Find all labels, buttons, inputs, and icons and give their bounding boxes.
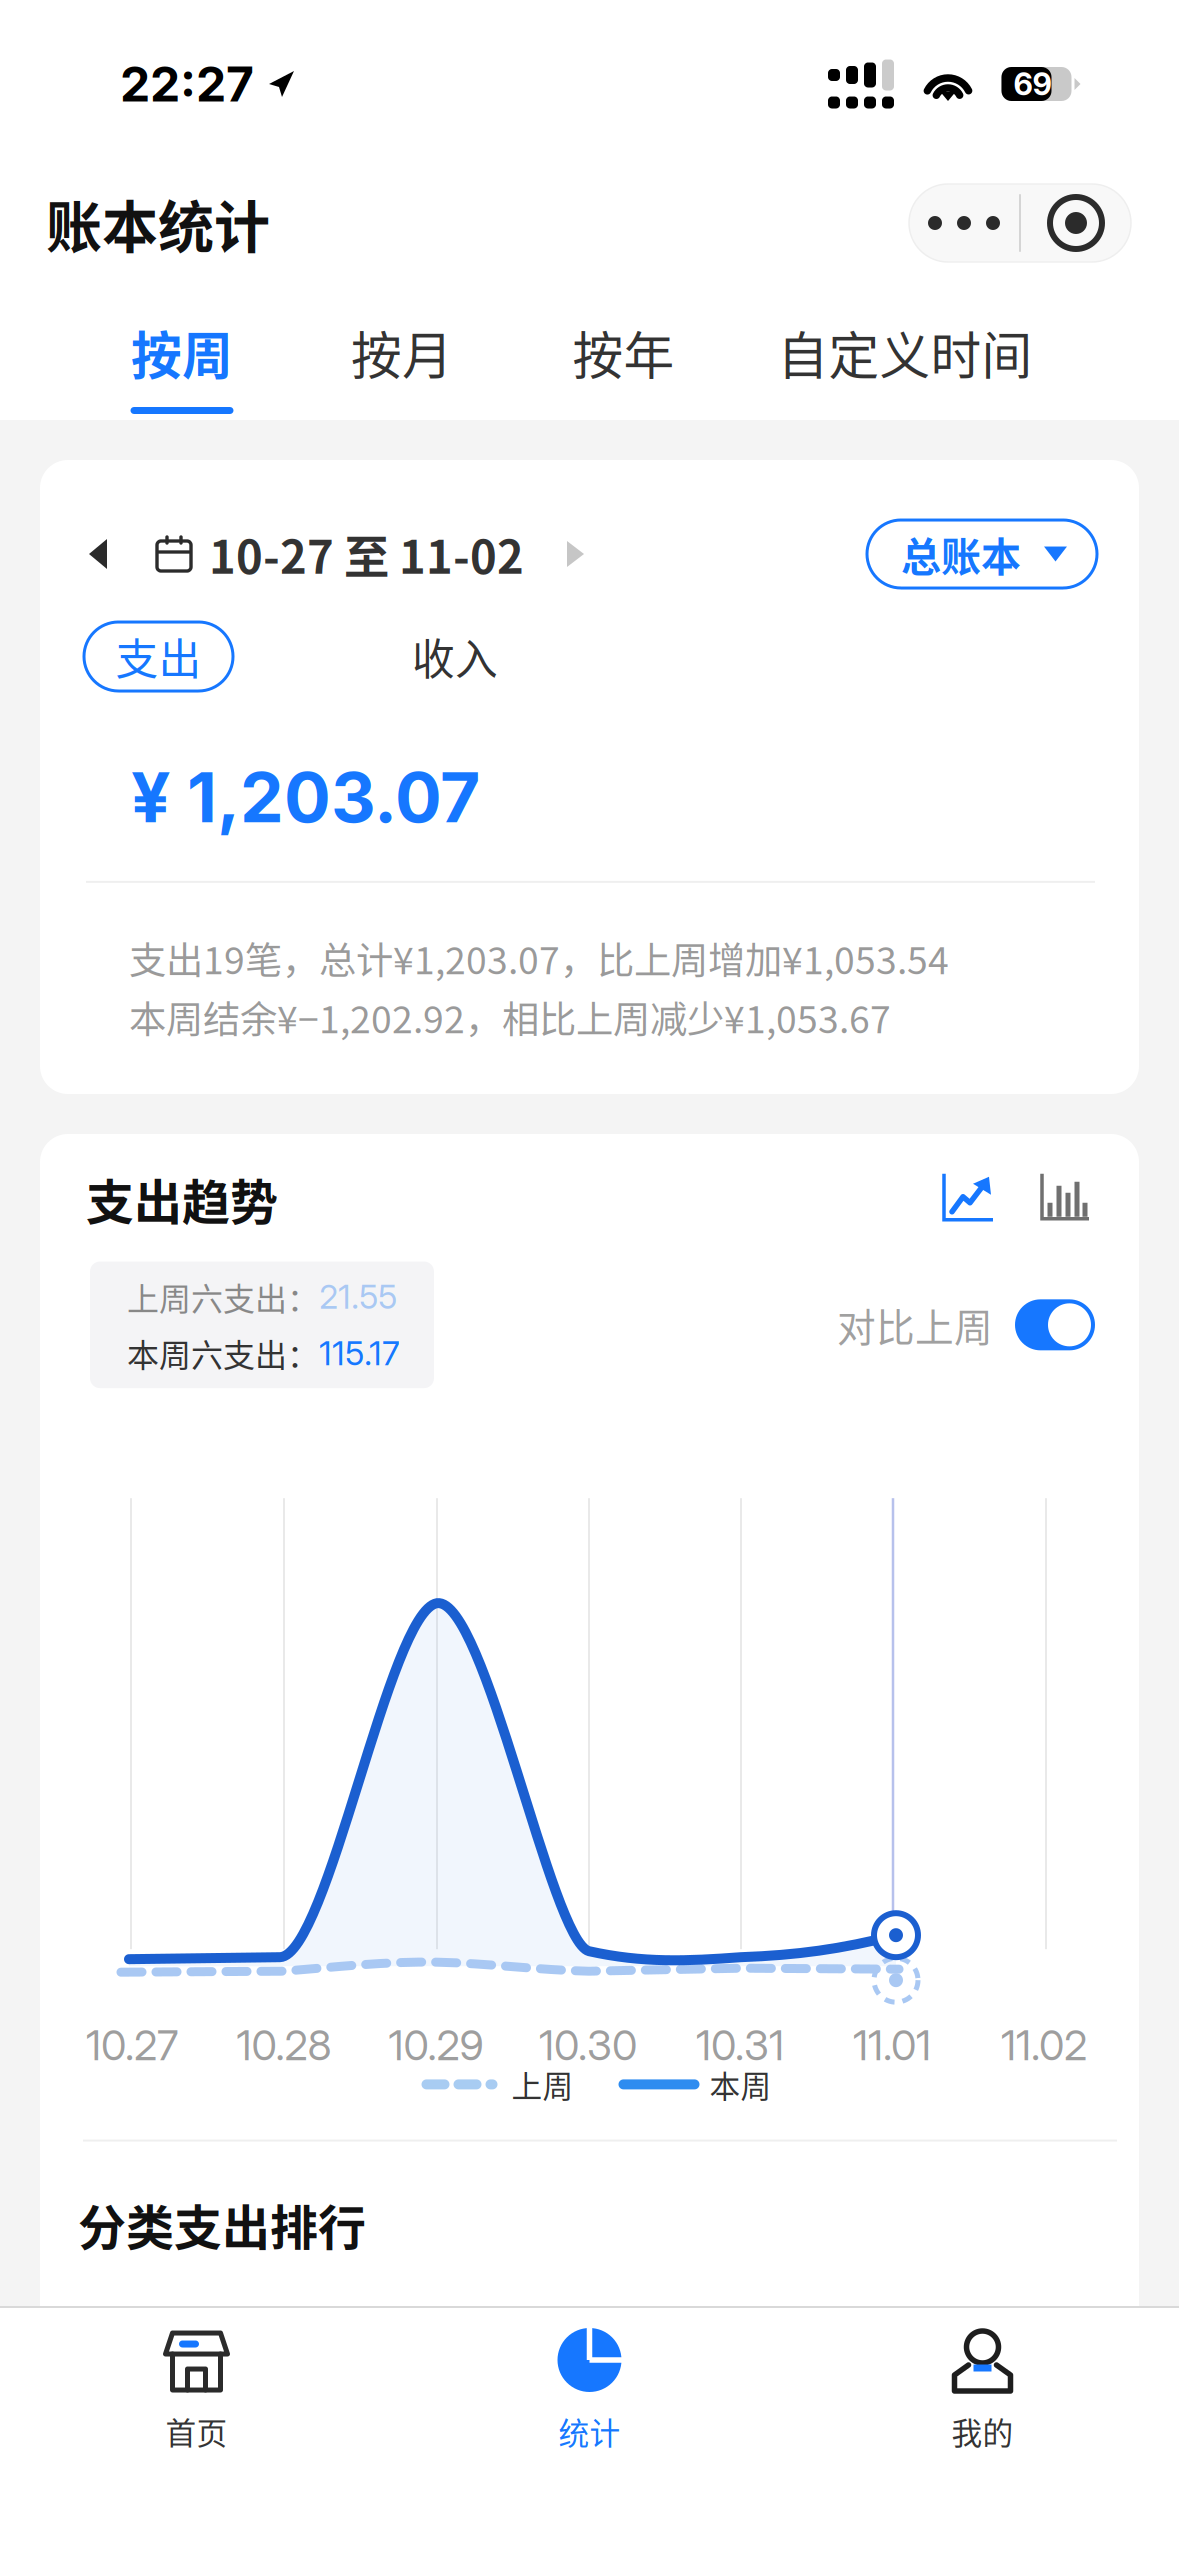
staticText: 10.28 <box>236 2020 331 2070</box>
button[interactable]: Line chart <box>941 1172 999 1226</box>
staticText: 首页 <box>165 2409 227 2453</box>
staticText: 69 <box>1013 65 1051 102</box>
staticText: 支出 <box>115 626 201 687</box>
staticText: 21.55 <box>319 1276 397 1317</box>
button[interactable]: 首页 <box>0 2325 393 2453</box>
staticText: 按周 <box>131 316 233 389</box>
staticText: 分类支出排行 <box>78 2190 366 2259</box>
staticText: 10.30 <box>539 2020 637 2070</box>
staticText: 支出19笔，总计¥1,203.07，比上周增加¥1,053.54 <box>129 931 949 985</box>
staticText: 自定义时间 <box>777 316 1032 389</box>
staticText: 对比上周 <box>837 1297 993 1353</box>
staticText: 10-27 至 11-02 <box>209 521 524 587</box>
button[interactable]: 自定义时间 <box>735 278 1075 420</box>
staticText: 本周 <box>709 2062 771 2107</box>
staticText: 总账本 <box>901 525 1021 583</box>
button[interactable]: 总账本 <box>867 520 1097 588</box>
staticText: 10.29 <box>388 2020 483 2070</box>
staticText: 按月 <box>351 316 453 389</box>
staticText: 按年 <box>572 316 674 389</box>
button[interactable]: 按周 <box>72 278 292 420</box>
button[interactable]: More <box>909 184 1019 262</box>
staticText: 22:27 <box>120 55 254 113</box>
button[interactable]: Compare with last week <box>1015 1299 1095 1350</box>
staticText: 我的 <box>951 2409 1013 2453</box>
button[interactable]: 按月 <box>292 278 512 420</box>
staticText: 支出趋势 <box>86 1164 278 1233</box>
staticText: 上周 <box>511 2062 573 2107</box>
button[interactable]: 收入 <box>391 622 519 691</box>
staticText: 11.01 <box>853 2020 931 2070</box>
staticText: 10.27 <box>86 2020 178 2070</box>
button[interactable]: 统计 <box>393 2325 786 2453</box>
button[interactable]: Close mini program <box>1021 184 1131 262</box>
staticText: 上周六支出： <box>127 1273 319 1320</box>
button[interactable]: 我的 <box>786 2325 1179 2453</box>
staticText: 账本统计 <box>46 182 270 264</box>
staticText: 本周六支出： <box>127 1330 319 1376</box>
staticText: 统计 <box>558 2409 620 2453</box>
button[interactable]: 支出 <box>84 622 233 691</box>
button[interactable]: 按年 <box>512 278 735 420</box>
button[interactable]: Previous week <box>87 537 110 571</box>
staticText: ¥ 1,203.07 <box>131 755 480 839</box>
button[interactable]: Bar chart <box>1039 1172 1093 1226</box>
staticText: 本周结余¥−1,202.92，相比上周减少¥1,053.67 <box>129 990 891 1044</box>
staticText: 10.31 <box>696 2020 784 2070</box>
staticText: 收入 <box>412 626 498 687</box>
staticText: 115.17 <box>319 1333 400 1373</box>
button[interactable]: Next week <box>564 538 587 570</box>
staticText: 11.02 <box>1001 2020 1087 2070</box>
